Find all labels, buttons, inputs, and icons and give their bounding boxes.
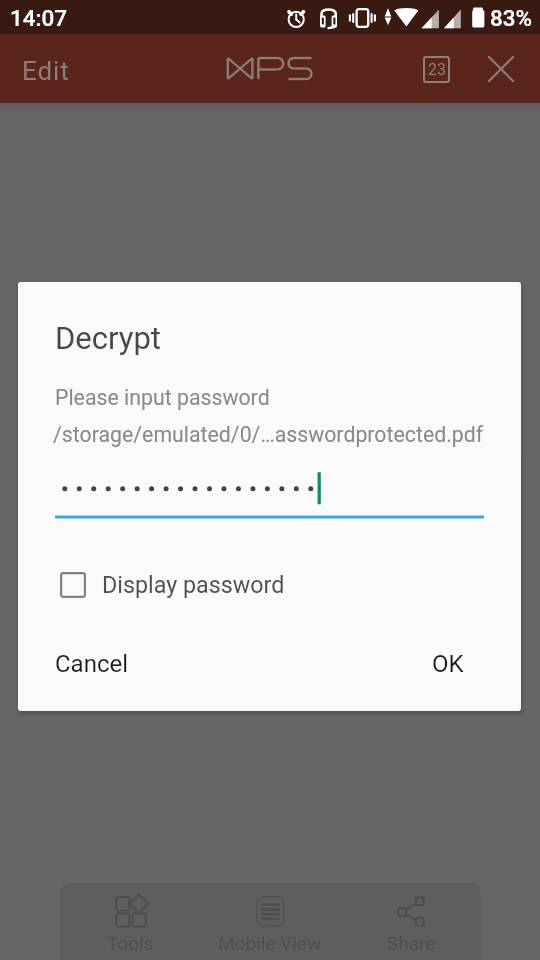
- staticText: Share: [387, 932, 436, 954]
- button[interactable]: Display password: [50, 561, 301, 608]
- staticText: /storage/emulated/0/…asswordprotected.pd…: [53, 422, 484, 447]
- staticText: Cancel: [55, 650, 129, 678]
- button[interactable]: Cancel: [39, 642, 145, 686]
- staticText: Edit: [22, 56, 70, 86]
- staticText: 14:07: [10, 5, 68, 31]
- staticText: Please input password: [55, 385, 270, 410]
- staticText: Tools: [107, 932, 154, 954]
- button[interactable]: [55, 464, 484, 520]
- staticText: 83%: [490, 5, 533, 31]
- button[interactable]: Mobile View: [200, 883, 340, 960]
- staticText: OK: [432, 650, 464, 678]
- button[interactable]: Tools: [60, 883, 200, 960]
- button[interactable]: Close: [477, 45, 525, 93]
- button[interactable]: OK: [416, 642, 480, 686]
- staticText: Display password: [102, 571, 285, 598]
- button[interactable]: Edit: [8, 46, 84, 96]
- button[interactable]: Page count 23: [412, 45, 460, 93]
- staticText: Decrypt: [55, 320, 162, 356]
- staticText: 23: [428, 60, 446, 79]
- staticText: Mobile View: [218, 932, 322, 954]
